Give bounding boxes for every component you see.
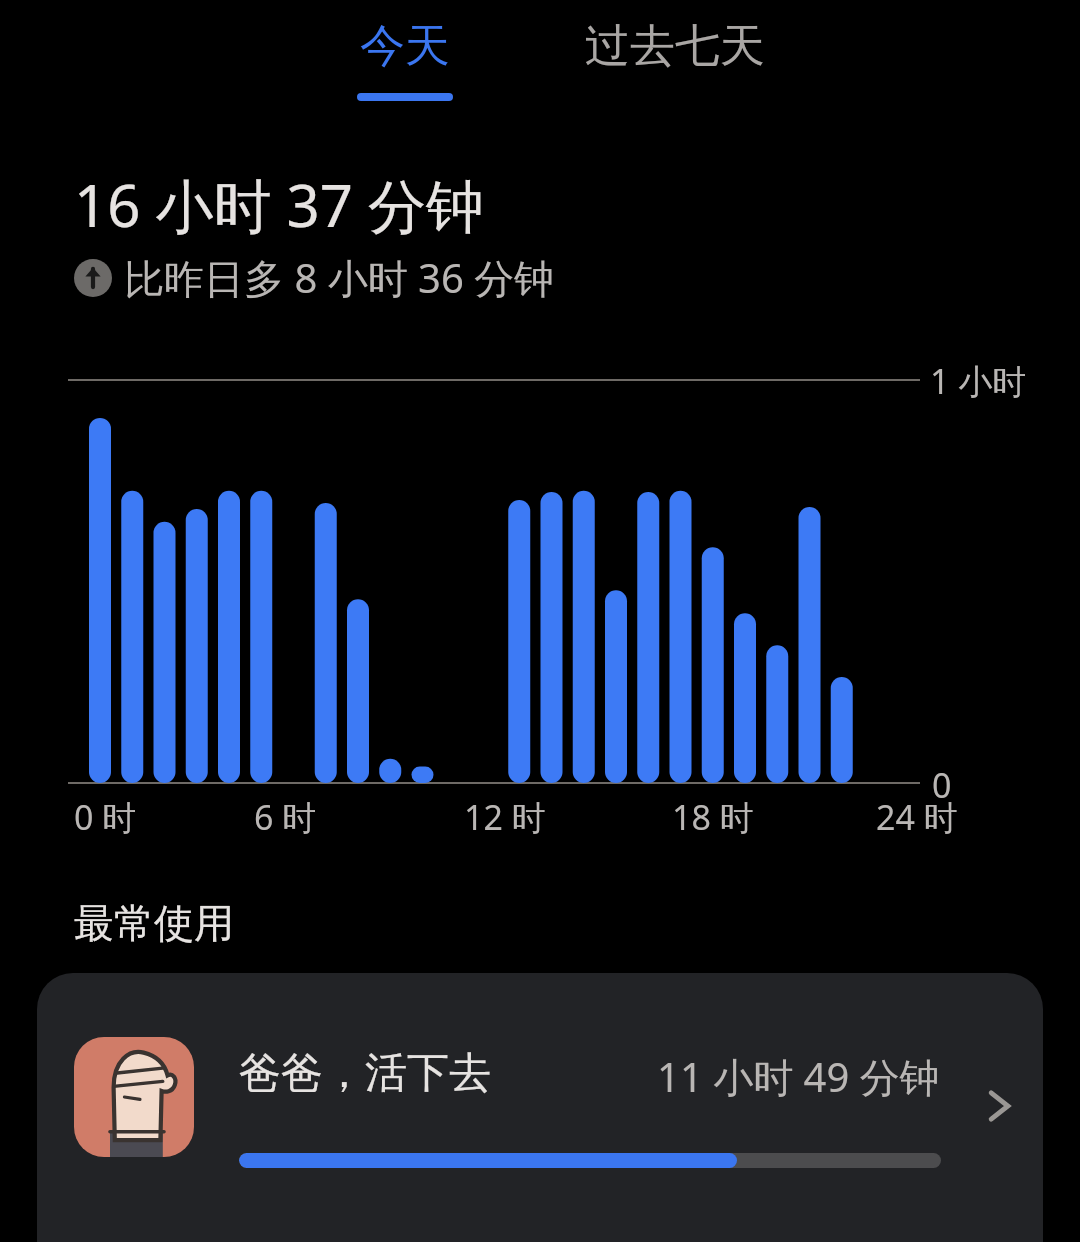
- staticText: 18 时: [672, 794, 754, 840]
- staticText: 6 时: [254, 794, 317, 840]
- staticText: 11 小时 49 分钟: [657, 1049, 940, 1104]
- staticText: 过去七天: [585, 18, 765, 75]
- staticText: 16 小时 37 分钟: [74, 165, 484, 244]
- button[interactable]: 查看详情: [957, 1063, 1043, 1149]
- staticText: 0 时: [74, 794, 137, 840]
- staticText: 1 小时: [930, 358, 1027, 404]
- button[interactable]: 爸爸，活下去: [37, 973, 1043, 1242]
- staticText: 24 时: [876, 794, 958, 840]
- staticText: 比昨日多 8 小时 36 分钟: [124, 250, 555, 305]
- staticText: 0: [932, 762, 952, 808]
- button[interactable]: 今天: [290, 18, 520, 118]
- staticText: 今天: [360, 18, 450, 75]
- staticText: 最常使用: [74, 898, 234, 948]
- staticText: 爸爸，活下去: [239, 1047, 491, 1100]
- button[interactable]: 过去七天: [560, 18, 790, 118]
- staticText: 12 时: [464, 794, 546, 840]
